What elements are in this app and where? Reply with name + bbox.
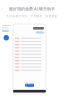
button[interactable] xyxy=(13,59,46,62)
button[interactable] xyxy=(13,40,46,43)
button[interactable] xyxy=(13,49,46,53)
button[interactable] xyxy=(13,53,46,56)
button[interactable] xyxy=(13,56,46,59)
button[interactable] xyxy=(13,62,46,65)
button[interactable]: 开始对话 xyxy=(25,83,34,87)
button[interactable] xyxy=(13,43,46,46)
button[interactable] xyxy=(13,37,46,40)
staticText: 支持多模型对话 · 文件解析 · 联网搜索 xyxy=(6,14,57,18)
staticText: 开始对话 xyxy=(25,82,34,88)
button[interactable] xyxy=(13,69,46,72)
staticText: 最好用的免费 AI 聊天助手 xyxy=(9,6,55,11)
button[interactable] xyxy=(13,65,46,69)
button[interactable] xyxy=(13,46,46,49)
